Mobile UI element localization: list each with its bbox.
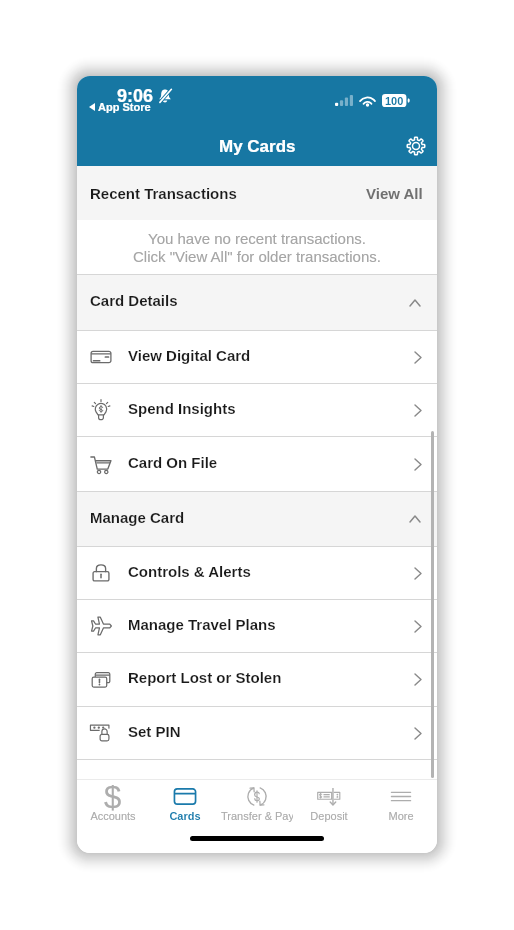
staticText: Card Details [90, 292, 178, 309]
button[interactable]: View All [366, 185, 423, 202]
button[interactable]: Manage Travel Plans [77, 600, 437, 652]
button[interactable]: Transfer & Pay [221, 780, 293, 828]
button[interactable]: Cards [149, 780, 221, 828]
staticText: View Digital Card [128, 347, 251, 364]
staticText: Set PIN [128, 723, 181, 740]
button[interactable]: View Digital Card [77, 331, 437, 383]
staticText: Click "View All" for older transactions. [133, 248, 381, 265]
staticText: Manage Card [90, 509, 185, 526]
staticText: Report Lost or Stolen [128, 669, 282, 686]
staticText: You have no recent transactions. [148, 230, 366, 247]
staticText: App Store [98, 101, 151, 113]
button[interactable]: More [365, 780, 437, 828]
staticText: More [388, 810, 414, 822]
button[interactable]: Set PIN [77, 707, 437, 759]
staticText: 100 [385, 95, 404, 107]
button[interactable]: Spend Insights [77, 384, 437, 436]
staticText: Card On File [128, 454, 218, 471]
staticText: Recent Transactions [90, 185, 237, 202]
staticText: View All [366, 185, 423, 202]
staticText: Controls & Alerts [128, 563, 251, 580]
button[interactable]: Card On File [77, 437, 437, 491]
staticText: Cards [169, 810, 201, 822]
button[interactable]: Settings [401, 131, 431, 161]
staticText: Manage Travel Plans [128, 616, 276, 633]
button[interactable]: Controls & Alerts [77, 547, 437, 599]
staticText: Transfer & Pay [221, 810, 293, 822]
button[interactable]: Manage Card [77, 492, 437, 546]
button[interactable]: Deposit [293, 780, 365, 828]
button[interactable]: $ [77, 780, 149, 828]
button[interactable]: Card Details [77, 275, 437, 330]
staticText: Spend Insights [128, 400, 236, 417]
staticText: Accounts [90, 810, 136, 822]
button[interactable]: Report Lost or Stolen [77, 653, 437, 706]
staticText: My Cards [219, 137, 296, 156]
staticText: $ [104, 780, 122, 815]
staticText: Deposit [310, 810, 348, 822]
staticText: 9:06 [117, 86, 154, 106]
